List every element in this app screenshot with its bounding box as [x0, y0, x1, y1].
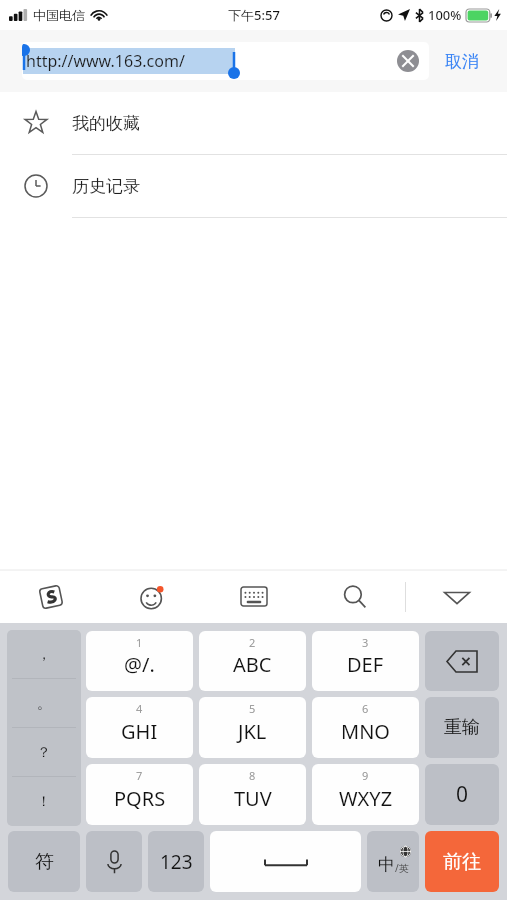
staticText: ？: [37, 744, 51, 762]
button[interactable]: Key: [425, 764, 499, 825]
staticText: 中国电信: [33, 7, 85, 23]
staticText: 1: [136, 635, 143, 650]
staticText: 下午5:57: [228, 6, 280, 24]
staticText: /英: [395, 861, 409, 875]
staticText: 重输: [444, 716, 480, 739]
staticText: MNO: [341, 718, 390, 745]
staticText: 历史记录: [72, 176, 140, 197]
button[interactable]: 我的收藏: [0, 92, 507, 154]
button[interactable]: Space: [210, 831, 361, 892]
button[interactable]: Switch language: [367, 831, 419, 892]
button[interactable]: 4: [86, 697, 193, 758]
staticText: 6: [362, 701, 369, 716]
button[interactable]: 9: [312, 764, 419, 825]
staticText: ，: [37, 646, 51, 664]
staticText: 123: [160, 849, 193, 875]
staticText: 5: [249, 701, 256, 716]
staticText: 前往: [443, 850, 481, 874]
staticText: 中: [378, 854, 395, 875]
button[interactable]: 1: [86, 631, 193, 691]
staticText: TUV: [234, 785, 272, 812]
button[interactable]: ，: [7, 630, 81, 679]
staticText: PQRS: [114, 785, 166, 812]
button[interactable]: Search: [304, 570, 405, 623]
button[interactable]: 取消: [429, 42, 495, 80]
staticText: http://www.163.com/: [26, 50, 185, 72]
staticText: 8: [249, 768, 256, 783]
staticText: 7: [136, 768, 143, 783]
staticText: JKL: [238, 718, 267, 745]
staticText: DEF: [347, 651, 384, 678]
button[interactable]: 前往: [425, 831, 499, 892]
button[interactable]: Hide keyboard: [406, 570, 507, 623]
button[interactable]: Emoji: [102, 570, 203, 623]
button[interactable]: Key: [425, 631, 499, 691]
button[interactable]: Sogou input: [0, 570, 102, 623]
staticText: GHI: [121, 718, 158, 745]
staticText: 3: [362, 635, 369, 650]
staticText: 符: [35, 850, 54, 874]
button[interactable]: ？: [7, 728, 81, 777]
staticText: ！: [37, 793, 51, 811]
button[interactable]: Clear: [397, 50, 419, 72]
staticText: 100%: [428, 6, 462, 24]
button[interactable]: 2: [199, 631, 306, 691]
staticText: WXYZ: [339, 785, 393, 812]
staticText: @/.: [124, 651, 155, 678]
button[interactable]: 5: [199, 697, 306, 758]
staticText: ABC: [233, 651, 272, 678]
staticText: 。: [37, 695, 51, 713]
button[interactable]: 6: [312, 697, 419, 758]
staticText: 2: [249, 635, 256, 650]
staticText: 我的收藏: [72, 113, 140, 134]
button[interactable]: ！: [7, 777, 81, 826]
staticText: 4: [136, 701, 143, 716]
button[interactable]: 8: [199, 764, 306, 825]
button[interactable]: 7: [86, 764, 193, 825]
button[interactable]: 3: [312, 631, 419, 691]
button[interactable]: Key: [425, 697, 499, 758]
staticText: 取消: [445, 51, 479, 72]
button[interactable]: 。: [7, 679, 81, 728]
button[interactable]: 历史记录: [0, 155, 507, 217]
staticText: 0: [456, 780, 469, 809]
button[interactable]: http://www.163.com/: [22, 42, 429, 80]
button[interactable]: Keyboard layout: [203, 570, 304, 623]
button[interactable]: 123: [148, 831, 204, 892]
staticText: 9: [362, 768, 369, 783]
button[interactable]: Voice input: [86, 831, 142, 892]
button[interactable]: 符: [8, 831, 80, 892]
